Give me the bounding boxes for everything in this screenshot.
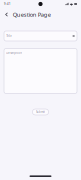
button[interactable]: Clear text	[72, 35, 75, 37]
button[interactable]: Back	[3, 8, 11, 20]
staticText: Title	[6, 34, 12, 38]
button[interactable]: Submit	[32, 109, 49, 115]
staticText: 9:41	[4, 2, 11, 6]
staticText: Submit	[36, 110, 45, 114]
staticText: Description	[6, 51, 22, 55]
staticText: Question Page	[13, 11, 51, 18]
